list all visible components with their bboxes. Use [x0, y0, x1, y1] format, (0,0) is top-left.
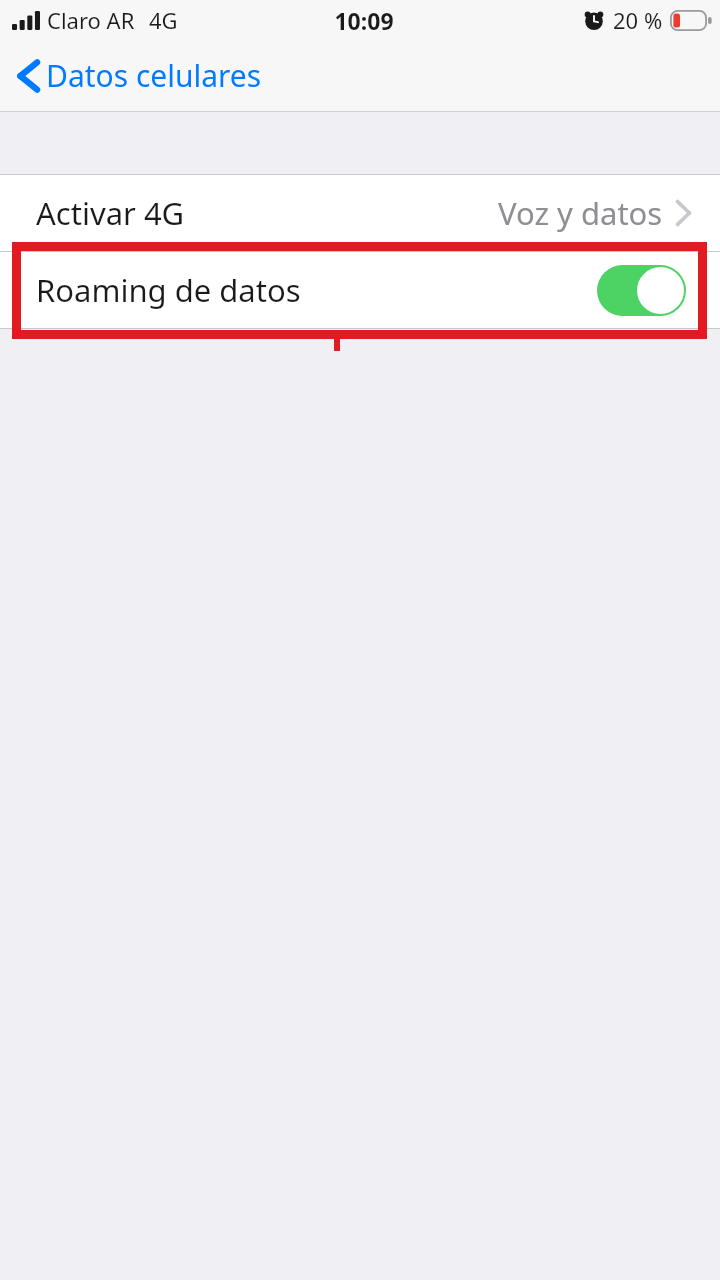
staticText: Datos celulares	[46, 55, 262, 96]
staticText: 10:09	[334, 5, 394, 36]
staticText: 20 %	[613, 5, 663, 35]
button[interactable]: Roaming de datos, activado	[597, 265, 686, 316]
button[interactable]: Roaming de datos	[0, 252, 720, 328]
button[interactable]: Back	[16, 55, 262, 96]
staticText: Roaming de datos	[36, 269, 301, 311]
staticText: Voz y datos	[498, 192, 663, 234]
staticText: Claro AR	[47, 5, 135, 35]
staticText: Activar 4G	[36, 192, 185, 234]
other: Back	[16, 58, 40, 94]
staticText: 4G	[149, 5, 178, 35]
button[interactable]: Activar 4G	[0, 175, 720, 251]
